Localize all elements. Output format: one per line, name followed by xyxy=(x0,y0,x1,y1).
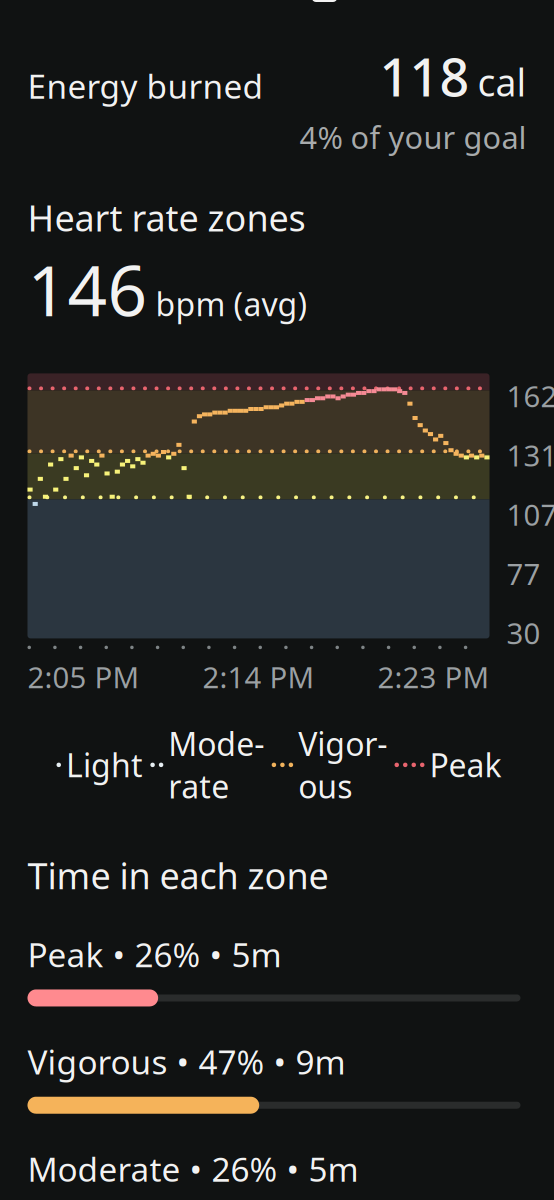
staticText: Moderate • 26% • 5m xyxy=(27,1147,358,1191)
staticText: cal xyxy=(477,57,526,107)
staticText: 77 xyxy=(506,554,540,593)
staticText: Energy burned xyxy=(27,64,263,108)
staticText: Vigorous • 47% • 9m xyxy=(27,1039,345,1084)
staticText: bpm (avg) xyxy=(155,283,307,325)
staticText: 118 xyxy=(379,42,469,111)
staticText: 2:14 PM xyxy=(202,657,314,696)
staticText: 146 xyxy=(27,243,147,335)
staticText: Peak xyxy=(429,744,501,786)
button[interactable]: Share xyxy=(297,0,351,13)
staticText: Light xyxy=(66,744,143,786)
staticText: 4% of your goal xyxy=(299,117,526,157)
staticText: 2:23 PM xyxy=(377,657,489,696)
staticText: 2:05 PM xyxy=(27,657,139,696)
staticText: 131 xyxy=(506,436,554,475)
staticText: Heart rate zones xyxy=(27,193,305,241)
staticText: 162 xyxy=(506,376,554,415)
staticText: 30 xyxy=(506,613,540,652)
staticText: Moderate xyxy=(168,722,264,807)
staticText: Time in each zone xyxy=(27,851,328,899)
staticText: 107 xyxy=(506,495,554,534)
staticText: Peak • 26% • 5m xyxy=(27,932,281,976)
staticText: Vigorous xyxy=(298,722,387,807)
